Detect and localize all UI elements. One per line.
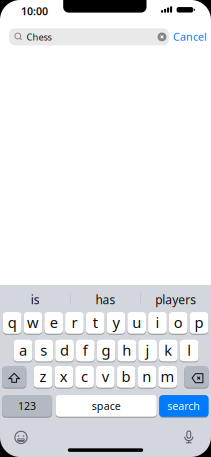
button[interactable]: Emoji bbox=[12, 429, 29, 446]
staticText: z bbox=[40, 366, 47, 386]
button[interactable]: 123 bbox=[2, 394, 52, 418]
staticText: m bbox=[161, 366, 175, 386]
button[interactable]: Dictate bbox=[183, 430, 195, 445]
staticText: u bbox=[132, 313, 141, 332]
button[interactable]: s bbox=[34, 339, 53, 362]
button[interactable]: f bbox=[76, 339, 95, 362]
button[interactable]: t bbox=[86, 311, 104, 335]
button[interactable]: Delete bbox=[184, 365, 208, 389]
staticText: r bbox=[71, 313, 77, 332]
button[interactable]: r bbox=[65, 311, 84, 335]
button[interactable]: search bbox=[159, 394, 208, 418]
button[interactable]: h bbox=[117, 339, 136, 362]
button[interactable]: a bbox=[14, 339, 32, 362]
staticText: l bbox=[187, 340, 191, 360]
button[interactable]: k bbox=[159, 339, 178, 362]
staticText: q bbox=[8, 313, 17, 332]
button[interactable]: space bbox=[56, 394, 157, 418]
staticText: h bbox=[122, 340, 131, 360]
staticText: Chess bbox=[26, 31, 51, 43]
staticText: k bbox=[164, 340, 172, 360]
button[interactable]: q bbox=[3, 311, 21, 335]
button[interactable]: j bbox=[138, 339, 157, 362]
button[interactable]: x bbox=[54, 365, 73, 389]
staticText: 123 bbox=[18, 399, 36, 413]
staticText: Cancel bbox=[173, 30, 207, 44]
staticText: n bbox=[142, 366, 151, 386]
staticText: y bbox=[112, 313, 119, 332]
staticText: i bbox=[155, 313, 159, 332]
button[interactable]: b bbox=[117, 365, 135, 389]
button[interactable]: w bbox=[24, 311, 42, 335]
button[interactable]: o bbox=[169, 311, 188, 335]
staticText: is bbox=[31, 292, 40, 307]
staticText: x bbox=[60, 366, 68, 386]
button[interactable]: Cancel bbox=[173, 30, 207, 44]
staticText: e bbox=[50, 313, 58, 332]
button[interactable]: e bbox=[44, 311, 63, 335]
button[interactable]: z bbox=[34, 365, 52, 389]
staticText: t bbox=[93, 313, 98, 332]
button[interactable]: p bbox=[190, 311, 208, 335]
staticText: s bbox=[40, 340, 47, 360]
staticText: p bbox=[194, 313, 203, 332]
button[interactable]: players bbox=[143, 288, 209, 312]
staticText: players bbox=[155, 292, 196, 307]
staticText: has bbox=[95, 292, 115, 307]
staticText: f bbox=[83, 340, 88, 360]
staticText: j bbox=[146, 340, 150, 360]
button[interactable]: n bbox=[137, 365, 156, 389]
staticText: c bbox=[81, 366, 88, 386]
staticText: w bbox=[27, 313, 39, 332]
button[interactable]: Search, Chess bbox=[9, 28, 169, 45]
staticText: space bbox=[92, 399, 121, 413]
button[interactable]: c bbox=[75, 365, 94, 389]
staticText: 10:00 bbox=[21, 4, 48, 18]
button[interactable]: has bbox=[72, 288, 138, 312]
staticText: search bbox=[167, 399, 200, 413]
button[interactable]: v bbox=[96, 365, 115, 389]
button[interactable]: g bbox=[97, 339, 115, 362]
button[interactable]: y bbox=[107, 311, 125, 335]
staticText: v bbox=[102, 366, 109, 386]
button[interactable]: Shift bbox=[2, 365, 26, 389]
staticText: o bbox=[174, 313, 183, 332]
button[interactable]: u bbox=[127, 311, 146, 335]
button[interactable]: l bbox=[180, 339, 198, 362]
staticText: b bbox=[122, 366, 131, 386]
staticText: d bbox=[60, 340, 69, 360]
button[interactable]: i bbox=[148, 311, 167, 335]
button[interactable]: m bbox=[158, 365, 177, 389]
button[interactable]: is bbox=[2, 288, 68, 312]
button[interactable]: d bbox=[55, 339, 74, 362]
staticText: g bbox=[102, 340, 111, 360]
staticText: a bbox=[19, 340, 27, 360]
